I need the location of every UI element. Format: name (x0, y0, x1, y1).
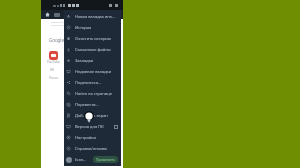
staticText: Версия для ПК (75, 124, 104, 129)
button[interactable]: Скачанные файлы (64, 44, 121, 55)
staticText: Google (49, 37, 64, 43)
button[interactable]: История (64, 22, 121, 33)
button[interactable]: Поделиться... (64, 77, 121, 88)
staticText: Закладки (75, 58, 94, 63)
button[interactable]: Tab (64, 13, 70, 17)
button[interactable]: Недавние вкладки (64, 66, 121, 77)
button[interactable]: Версия для ПК (64, 121, 121, 132)
button[interactable]: Перевести... (64, 99, 121, 110)
staticText: Очистить историю (75, 36, 112, 41)
button[interactable]: Очистить историю (64, 33, 121, 44)
button[interactable]: Настройки (64, 132, 121, 143)
staticText: Найти на странице (75, 91, 112, 96)
staticText: Справка/отзывы (75, 146, 108, 151)
staticText: Почта (49, 76, 59, 80)
staticText: Ivan... (75, 157, 87, 162)
button[interactable]: Справка/отзывы (64, 143, 121, 154)
button[interactable]: YouTube (49, 51, 58, 60)
button[interactable]: Найти на странице (64, 88, 121, 99)
button[interactable]: Tab (54, 13, 60, 17)
staticText: Доб. на гл. экран (75, 113, 108, 118)
staticText: Поделиться... (75, 80, 102, 85)
staticText: История (75, 25, 92, 30)
staticText: Применить (96, 157, 115, 162)
staticText: Новая вкладка инк... (75, 14, 116, 19)
button[interactable]: Home (45, 12, 50, 17)
button[interactable]: Закладки (64, 55, 121, 66)
button[interactable]: Доб. на гл. экран (64, 110, 121, 121)
staticText: ВК (50, 68, 55, 72)
button[interactable]: Новая вкладка инк... (64, 11, 121, 22)
staticText: Настройки (75, 135, 96, 140)
staticText: Перевести... (75, 102, 99, 107)
staticText: YouTube (47, 60, 60, 64)
staticText: Недавние вкладки (75, 69, 112, 74)
button[interactable]: Применить (93, 156, 118, 163)
staticText: Скачанные файлы (75, 47, 111, 52)
button[interactable]: Ivan... (64, 154, 121, 165)
